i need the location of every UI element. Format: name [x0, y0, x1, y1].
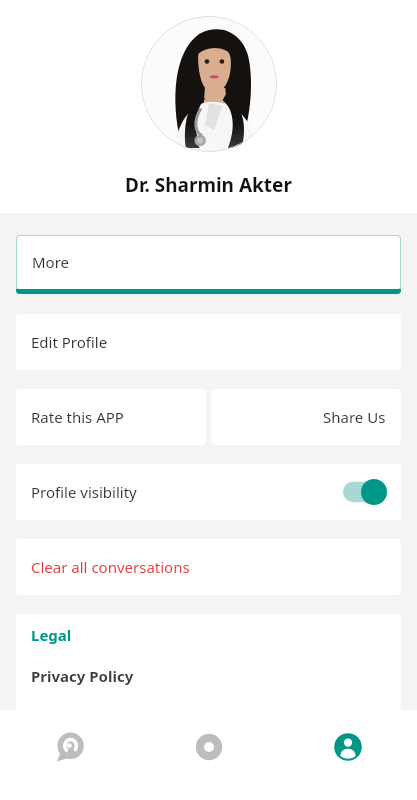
- button[interactable]: Profile: [288, 710, 408, 784]
- button[interactable]: Privacy Policy: [16, 655, 401, 696]
- staticText: Profile visibility: [31, 482, 137, 502]
- button[interactable]: Share Us: [211, 389, 401, 445]
- button[interactable]: Legal: [16, 614, 401, 655]
- staticText: More: [32, 252, 70, 272]
- button[interactable]: Edit Profile: [16, 314, 401, 370]
- staticText: Share Us: [323, 407, 386, 427]
- staticText: Clear all conversations: [31, 557, 190, 577]
- button[interactable]: Status: [149, 710, 269, 784]
- staticText: Legal: [31, 625, 72, 645]
- button[interactable]: Clear all conversations: [16, 539, 401, 595]
- button[interactable]: Rate this APP: [16, 389, 206, 445]
- other: Profile visibility toggle: [343, 479, 387, 505]
- staticText: Dr. Sharmin Akter: [125, 172, 292, 198]
- button[interactable]: More: [16, 235, 401, 294]
- staticText: Privacy Policy: [31, 666, 134, 686]
- staticText: Rate this APP: [31, 407, 124, 427]
- button[interactable]: Chats: [10, 710, 130, 784]
- button[interactable]: Profile photo: [141, 16, 277, 152]
- staticText: Edit Profile: [31, 332, 108, 352]
- button[interactable]: Profile visibility: [16, 464, 401, 520]
